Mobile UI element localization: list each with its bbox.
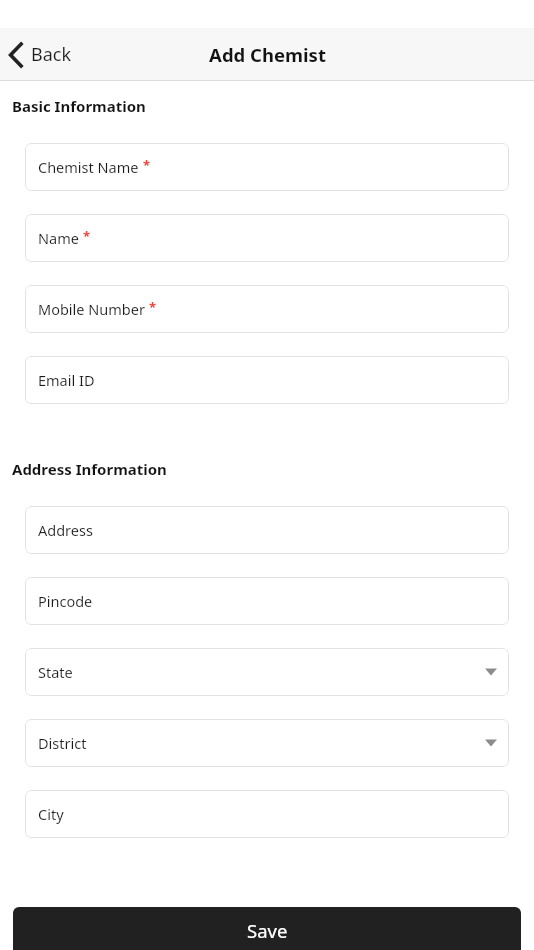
staticText: Basic Information xyxy=(12,96,146,116)
staticText: Pincode xyxy=(38,591,93,611)
button[interactable]: City xyxy=(25,790,509,838)
staticText: State xyxy=(38,662,73,682)
staticText: Save xyxy=(247,918,288,943)
button[interactable]: State xyxy=(25,648,509,696)
staticText: Address Information xyxy=(12,459,167,479)
staticText: District xyxy=(38,733,87,753)
staticText: City xyxy=(38,804,64,824)
staticText: Address xyxy=(38,520,93,540)
button[interactable]: Chemist Name xyxy=(25,143,509,191)
staticText: Chemist Name xyxy=(38,157,139,177)
staticText: Email ID xyxy=(38,370,95,390)
staticText: Add Chemist xyxy=(209,42,326,67)
button[interactable]: Back xyxy=(8,28,72,81)
button[interactable]: Name xyxy=(25,214,509,262)
staticText: Back xyxy=(31,42,72,67)
button[interactable]: District xyxy=(25,719,509,767)
staticText: Name xyxy=(38,228,79,248)
button[interactable]: Address xyxy=(25,506,509,554)
button[interactable]: Save xyxy=(13,907,521,950)
staticText: Mobile Number xyxy=(38,299,145,319)
staticText: * xyxy=(83,227,91,245)
button[interactable]: Pincode xyxy=(25,577,509,625)
staticText: * xyxy=(143,156,151,174)
button[interactable]: Email ID xyxy=(25,356,509,404)
button[interactable]: Mobile Number xyxy=(25,285,509,333)
staticText: * xyxy=(149,298,157,316)
